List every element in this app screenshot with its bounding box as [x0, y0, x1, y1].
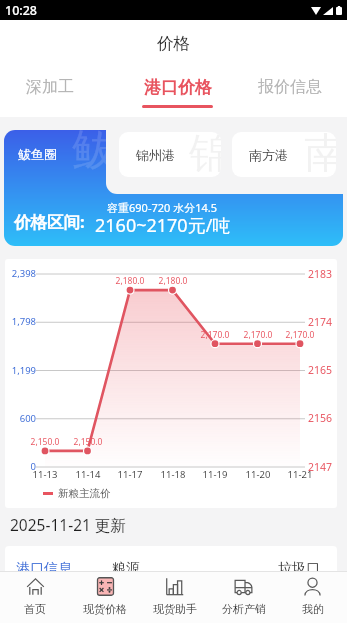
staticText: 2165 [308, 363, 333, 377]
staticText: 2,180.0 [151, 275, 195, 287]
staticText: 鲅 [72, 130, 106, 170]
staticText: 11-14 [66, 468, 110, 481]
other: 现货助手 [165, 577, 184, 596]
staticText: 鲅鱼圈 [18, 146, 57, 162]
staticText: 2183 [308, 267, 333, 281]
button[interactable]: 南 [232, 132, 336, 177]
staticText: 2160~2170元/吨 [95, 213, 231, 238]
staticText: 2,150.0 [66, 436, 110, 448]
staticText: 新粮主流价 [58, 487, 111, 500]
staticText: 分析产销 [222, 602, 266, 616]
button[interactable]: 我的 [278, 572, 347, 616]
button[interactable]: 港口信息 [16, 560, 72, 576]
button[interactable]: 深加工 [16, 66, 84, 97]
staticText: 港口价格 [144, 77, 212, 98]
staticText: 首页 [24, 602, 46, 616]
button[interactable]: 鲅 [4, 130, 106, 177]
staticText: 2,150.0 [23, 436, 67, 448]
staticText: 11-17 [108, 468, 152, 481]
staticText: 11-19 [193, 468, 237, 481]
staticText: 11-20 [236, 468, 280, 481]
button[interactable]: 现货助手 [140, 572, 209, 616]
staticText: 600 [5, 412, 36, 425]
staticText: 容重690-720 水分14.5 [92, 200, 232, 215]
button[interactable]: 报价信息 [248, 66, 332, 97]
staticText: 1,199 [5, 364, 36, 377]
button[interactable]: 锦 [119, 132, 221, 177]
staticText: 价格区间: [14, 210, 85, 233]
staticText: 10:28 [5, 2, 38, 19]
button[interactable]: 分析产销 [209, 572, 278, 616]
staticText: 现货助手 [153, 602, 197, 616]
other: 我的 [303, 577, 322, 596]
staticText: 2,170.0 [278, 329, 322, 341]
staticText: 深加工 [26, 77, 74, 97]
staticText: 报价信息 [258, 77, 322, 97]
staticText: 11-18 [151, 468, 195, 481]
other: 首页 [26, 577, 45, 596]
staticText: 2156 [308, 411, 333, 425]
staticText: 我的 [302, 602, 324, 616]
staticText: 2,170.0 [193, 329, 237, 341]
staticText: 南方港 [249, 147, 288, 163]
button[interactable]: 港口价格 [132, 66, 223, 108]
staticText: 锦州港 [136, 147, 175, 163]
staticText: 南 [304, 132, 336, 172]
staticText: 2147 [308, 460, 333, 474]
other: 分析产销 [234, 577, 253, 596]
staticText: 1,798 [5, 315, 36, 328]
button[interactable]: 垃圾口 [278, 560, 320, 576]
button[interactable]: 粮源 [112, 560, 140, 576]
staticText: 2025-11-21 更新 [10, 514, 126, 535]
staticText: 2,170.0 [236, 329, 280, 341]
button[interactable]: 现货价格 [70, 572, 140, 616]
staticText: 11-13 [23, 468, 67, 481]
staticText: 2,398 [5, 267, 36, 280]
staticText: 锦 [189, 132, 221, 172]
other: 现货价格 [96, 577, 115, 596]
button[interactable]: 首页 [0, 572, 70, 616]
staticText: 0 [5, 460, 36, 473]
staticText: 2,180.0 [108, 275, 152, 287]
staticText: 现货价格 [83, 602, 127, 616]
staticText: 2174 [308, 315, 333, 329]
staticText: 11-21 [278, 468, 322, 481]
staticText: 价格 [157, 33, 190, 54]
